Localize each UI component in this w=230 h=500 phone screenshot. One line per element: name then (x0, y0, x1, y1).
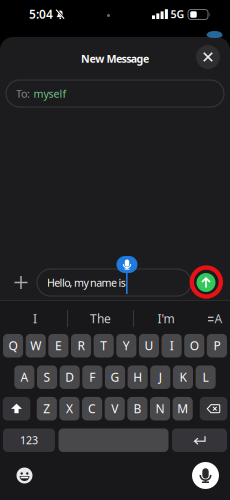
button[interactable] (58, 428, 168, 452)
button[interactable]: V (105, 397, 125, 420)
button[interactable]: J (150, 365, 170, 389)
button[interactable]: Z (37, 397, 57, 420)
staticText: X (66, 401, 73, 417)
button[interactable]: The (72, 305, 128, 331)
button[interactable]: T (94, 334, 114, 357)
button[interactable]: M (173, 397, 193, 420)
staticText: Y (123, 338, 130, 354)
staticText: 123 (20, 433, 38, 447)
button[interactable]: C (82, 397, 102, 420)
staticText: R (77, 338, 84, 354)
staticText: M (177, 401, 188, 417)
staticText: 5:04 (29, 6, 53, 22)
staticText: 5G (170, 7, 184, 21)
button[interactable]: H (128, 365, 148, 389)
button[interactable]: E (48, 334, 68, 357)
staticText: N (156, 401, 165, 417)
button[interactable]: D (60, 365, 80, 389)
staticText: D (65, 369, 74, 385)
button[interactable]: 123 (3, 428, 55, 452)
button[interactable] (200, 397, 227, 420)
staticText: A (20, 369, 28, 385)
button[interactable]: A (14, 365, 34, 389)
staticText: myself (33, 86, 66, 101)
button[interactable] (196, 45, 220, 69)
button[interactable]: G (105, 365, 125, 389)
staticText: Hello, my name is (47, 275, 126, 290)
staticText: P (213, 338, 220, 354)
staticText: F (89, 369, 95, 385)
button[interactable]: Q (3, 334, 23, 357)
button[interactable]: Hello, my name is (37, 269, 191, 296)
button[interactable]: W (26, 334, 46, 357)
staticText: I (170, 338, 174, 354)
staticText: V (111, 401, 118, 417)
button[interactable]: N (150, 397, 170, 420)
staticText: S (44, 369, 51, 385)
staticText: K (179, 369, 186, 385)
button[interactable] (11, 272, 31, 292)
staticText: H (133, 369, 142, 385)
button[interactable] (172, 428, 227, 452)
button[interactable]: I (7, 305, 63, 331)
button[interactable]: L (196, 365, 216, 389)
staticText: U (144, 338, 153, 354)
button[interactable]: K (173, 365, 193, 389)
button[interactable]: A (208, 313, 223, 324)
staticText: C (88, 401, 96, 417)
button[interactable]: I'm (138, 305, 194, 331)
button[interactable] (14, 465, 34, 485)
button[interactable]: Y (116, 334, 136, 357)
button[interactable]: To: (6, 80, 224, 107)
staticText: The (90, 310, 111, 326)
button[interactable]: U (139, 334, 159, 357)
button[interactable]: P (207, 334, 227, 357)
button[interactable]: X (59, 397, 79, 420)
staticText: I (33, 310, 37, 326)
button[interactable]: I (162, 334, 182, 357)
staticText: T (100, 338, 107, 354)
staticText: W (30, 338, 41, 354)
staticText: G (110, 369, 119, 385)
staticText: A (214, 310, 222, 326)
staticText: L (203, 369, 209, 385)
staticText: Q (9, 338, 18, 354)
staticText: E (55, 338, 62, 354)
button[interactable] (192, 462, 219, 489)
staticText: B (133, 401, 141, 417)
button[interactable] (3, 397, 30, 420)
button[interactable]: F (82, 365, 102, 389)
staticText: J (159, 369, 162, 385)
staticText: I'm (157, 310, 174, 326)
staticText: Z (43, 401, 50, 417)
button[interactable]: R (71, 334, 91, 357)
staticText: New Message (81, 51, 149, 66)
staticText: O (190, 338, 199, 354)
button[interactable] (196, 273, 215, 292)
button[interactable]: S (37, 365, 57, 389)
button[interactable]: O (184, 334, 204, 357)
staticText: To: (16, 86, 30, 101)
button[interactable]: B (127, 397, 147, 420)
